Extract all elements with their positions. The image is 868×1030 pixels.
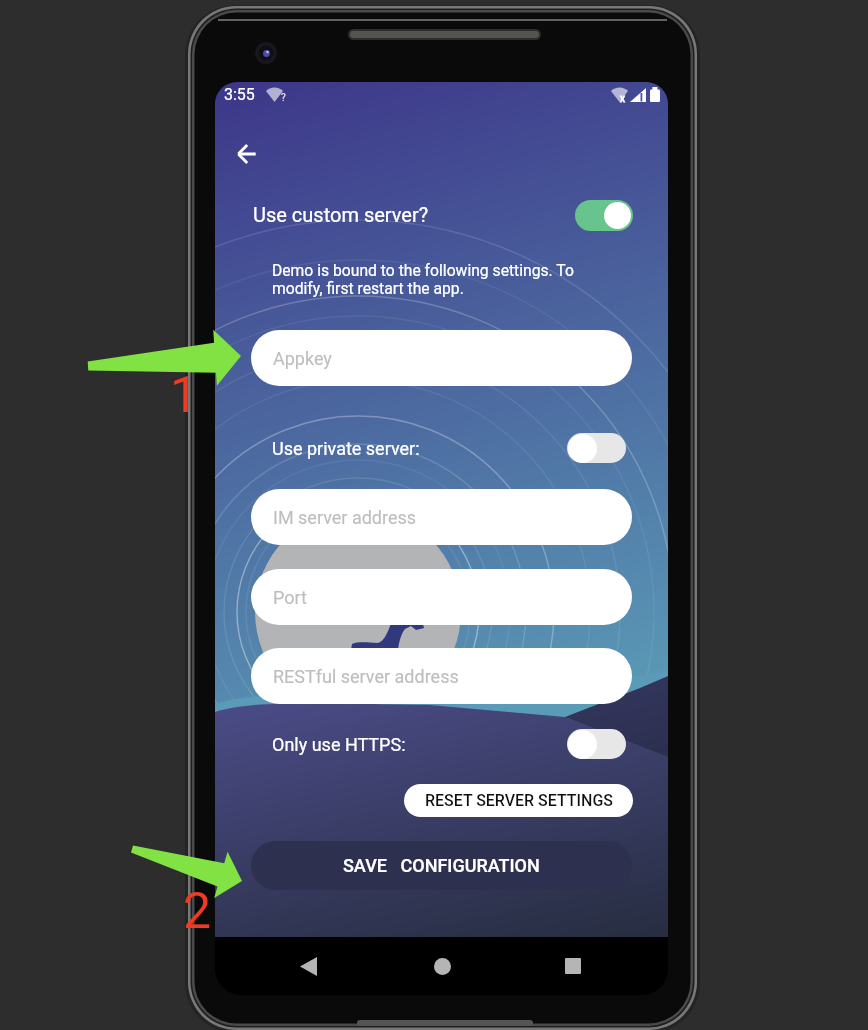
button[interactable]: Home [424,948,460,984]
staticText: IM server address [273,507,417,528]
staticText: Appkey [273,348,332,369]
staticText: Port [273,587,307,608]
button[interactable]: Appkey [251,330,632,386]
staticText: x [620,93,626,105]
staticText: RESET SERVER SETTINGS [425,791,613,810]
button[interactable]: SAVE CONFIGURATION [251,841,632,890]
staticText: Only use HTTPS: [272,734,406,755]
button[interactable]: Back [290,948,326,984]
button[interactable]: Port [251,569,632,625]
button[interactable]: RESTful server address [251,648,632,704]
button[interactable]: RESET SERVER SETTINGS [404,784,633,817]
staticText: 1 [170,366,199,425]
staticText: SAVE CONFIGURATION [343,855,540,876]
staticText: ? [281,92,286,104]
staticText: Use custom server? [253,203,429,226]
button[interactable]: Switch off [567,433,626,463]
button[interactable]: Switch on [575,200,633,231]
button[interactable]: Recent apps [555,948,591,984]
button[interactable]: Switch off [567,729,626,759]
staticText: Demo is bound to the following settings.… [272,261,574,297]
staticText: 3:55 [224,85,255,104]
staticText: 2 [183,882,212,941]
staticText: RESTful server address [273,666,459,687]
button[interactable]: Navigate up [224,132,268,176]
button[interactable]: IM server address [251,489,632,545]
staticText: Use private server: [272,438,420,459]
